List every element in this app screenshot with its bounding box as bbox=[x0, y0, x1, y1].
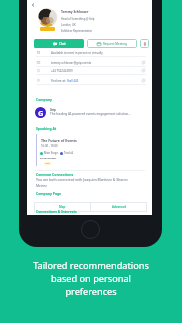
staticText: Speaking At bbox=[36, 126, 57, 131]
staticText: Tommy Schlosser bbox=[61, 10, 89, 14]
staticText: tommy.schlosser@grip.events bbox=[51, 61, 92, 65]
staticText: Map bbox=[59, 205, 66, 209]
button[interactable]: G bbox=[35, 107, 46, 118]
staticText: Tailored recommendations based on person… bbox=[0, 259, 182, 298]
staticText: Chat bbox=[59, 42, 66, 46]
button[interactable]: Available to meet in person or virtually bbox=[33, 48, 146, 57]
staticText: Available to meet in person or virtually bbox=[51, 51, 103, 55]
staticText: Exhibitor Representative bbox=[61, 29, 93, 33]
staticText: Advanced bbox=[112, 205, 127, 209]
staticText: Main Stage bbox=[44, 151, 58, 155]
button[interactable]: Find me at: bbox=[33, 76, 146, 85]
button[interactable]: Chat bbox=[34, 39, 84, 48]
button[interactable]: Request Meeting bbox=[87, 39, 137, 48]
staticText: Grip bbox=[50, 108, 56, 112]
staticText: Stall 443 bbox=[67, 79, 79, 83]
staticText: Request Meeting bbox=[103, 42, 127, 46]
staticText: London, UK bbox=[61, 23, 76, 27]
button[interactable]: tommy.schlosser@grip.events bbox=[33, 58, 146, 67]
staticText: 16:00 - 18:00 bbox=[41, 144, 58, 148]
button[interactable]: Map bbox=[34, 202, 90, 212]
staticText: Connections & Interests bbox=[36, 209, 77, 214]
button[interactable]: +44 7522424789 bbox=[33, 66, 146, 75]
staticText: NEW bbox=[45, 162, 50, 165]
staticText: The leading AI-powered events engagement… bbox=[50, 112, 131, 116]
staticText: The Future of Events bbox=[41, 138, 77, 143]
staticText: Second Speaker bbox=[40, 157, 57, 160]
staticText: +44 7522424789 bbox=[51, 69, 73, 73]
staticText: You are both connected with Joaquim Mart… bbox=[36, 177, 128, 188]
staticText: Find me at: bbox=[51, 79, 67, 83]
staticText: Common Connections bbox=[36, 172, 74, 177]
staticText: Company bbox=[36, 97, 52, 102]
staticText: Head of Something @ Grip bbox=[61, 17, 95, 21]
staticText: G bbox=[38, 108, 44, 118]
button[interactable]: More bbox=[140, 39, 149, 48]
staticText: Track A bbox=[64, 151, 73, 155]
button[interactable]: Advanced bbox=[91, 202, 147, 212]
staticText: Company Page bbox=[36, 191, 62, 196]
button[interactable]: Back bbox=[30, 2, 36, 8]
